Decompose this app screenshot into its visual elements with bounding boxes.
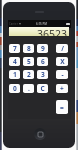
- button[interactable]: 7: [9, 44, 20, 53]
- button[interactable]: C: [37, 84, 48, 93]
- staticText: +: [60, 84, 64, 93]
- button[interactable]: 8: [23, 44, 34, 53]
- staticText: 36523: [37, 27, 68, 36]
- staticText: =: [60, 103, 64, 112]
- staticText: Carrier: [9, 22, 18, 26]
- button[interactable]: -: [56, 70, 68, 79]
- staticText: 3: [41, 70, 45, 79]
- staticText: 9: [41, 44, 45, 53]
- button[interactable]: /: [56, 44, 68, 53]
- button[interactable]: 9: [37, 44, 48, 53]
- staticText: -: [61, 70, 64, 79]
- button[interactable]: +: [56, 84, 68, 93]
- staticText: 5: [27, 57, 31, 66]
- button[interactable]: 2: [23, 70, 34, 79]
- staticText: .: [28, 84, 30, 93]
- staticText: 6:15 PM: [36, 22, 48, 26]
- staticText: C: [40, 84, 45, 93]
- staticText: 8: [27, 44, 31, 53]
- staticText: 2: [27, 70, 31, 79]
- staticText: 0: [13, 84, 17, 93]
- button[interactable]: 5: [23, 57, 34, 66]
- button[interactable]: =: [56, 100, 68, 114]
- staticText: 6: [41, 57, 45, 66]
- staticText: X: [60, 57, 65, 66]
- staticText: 4: [13, 57, 17, 66]
- button[interactable]: 3: [37, 70, 48, 79]
- button[interactable]: Home: [34, 128, 46, 140]
- button[interactable]: .: [23, 84, 34, 93]
- staticText: /: [61, 44, 64, 53]
- button[interactable]: 4: [9, 57, 20, 66]
- staticText: 1: [13, 70, 17, 79]
- button[interactable]: 1: [9, 70, 20, 79]
- button[interactable]: 6: [37, 57, 48, 66]
- button[interactable]: 0: [9, 84, 20, 93]
- staticText: 7: [13, 44, 17, 53]
- button[interactable]: X: [56, 57, 68, 66]
